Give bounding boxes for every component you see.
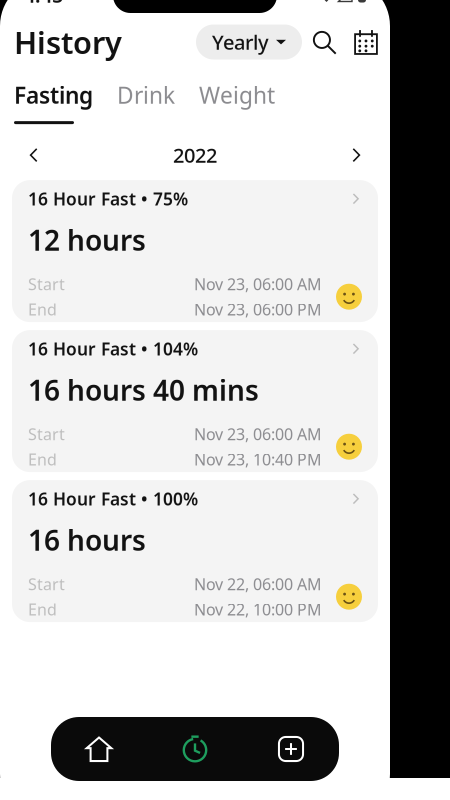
button[interactable]: 16 Hour Fast • 75% [12, 180, 378, 322]
staticText: Start [28, 573, 65, 595]
staticText: Nov 23, 10:40 PM [194, 449, 322, 470]
button[interactable]: Calendar [346, 20, 386, 64]
staticText: Start [28, 273, 65, 295]
staticText: Nov 23, 06:00 PM [194, 299, 322, 320]
staticText: Drink [117, 80, 175, 110]
button[interactable]: Fasting timer [147, 717, 243, 781]
button[interactable]: Next year [336, 138, 376, 172]
staticText: 12 hours [28, 221, 146, 258]
staticText: Nov 23, 06:00 AM [194, 273, 322, 295]
button[interactable]: Yearly [196, 24, 302, 59]
staticText: End [28, 449, 57, 470]
button[interactable]: Weight [199, 80, 275, 110]
staticText: 4:45 [24, 0, 63, 8]
staticText: 16 hours 40 mins [28, 371, 259, 408]
staticText: Nov 22, 10:00 PM [194, 599, 322, 620]
button[interactable]: Add entry [243, 717, 339, 781]
staticText: Start [28, 423, 65, 445]
staticText: 16 Hour Fast • 104% [28, 337, 198, 360]
staticText: Nov 22, 06:00 AM [194, 573, 322, 595]
staticText: Yearly [212, 29, 269, 55]
staticText: 2022 [173, 142, 217, 168]
button[interactable]: Drink [117, 80, 175, 110]
staticText: Weight [199, 80, 275, 110]
button[interactable]: Home [51, 717, 147, 781]
staticText: History [14, 22, 122, 62]
staticText: End [28, 599, 57, 620]
button[interactable]: Search [302, 20, 346, 64]
staticText: 16 hours [28, 521, 146, 558]
staticText: Fasting [14, 80, 93, 110]
staticText: 16 Hour Fast • 75% [28, 187, 188, 210]
button[interactable]: Fasting [14, 80, 93, 110]
staticText: End [28, 299, 57, 320]
staticText: 16 Hour Fast • 100% [28, 487, 198, 510]
button[interactable]: Previous year [14, 138, 54, 172]
button[interactable]: 16 Hour Fast • 104% [12, 330, 378, 472]
staticText: Nov 23, 06:00 AM [194, 423, 322, 445]
button[interactable]: 16 Hour Fast • 100% [12, 480, 378, 622]
